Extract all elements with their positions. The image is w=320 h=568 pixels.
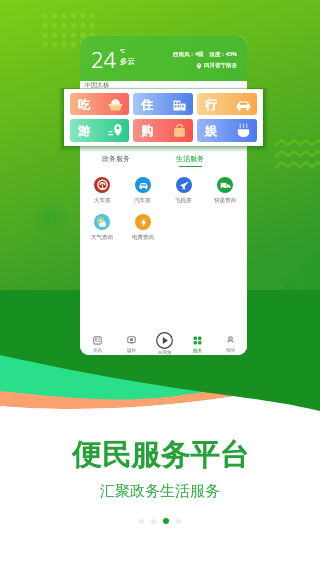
staticText: 住 [141, 97, 153, 112]
staticText: 行 [205, 97, 217, 112]
button[interactable]: 天气查询 [82, 212, 122, 241]
staticText: 爆料 [127, 348, 136, 354]
staticText: 中国太极 [85, 81, 109, 89]
button[interactable] [163, 518, 169, 524]
button[interactable]: 政务服务 [99, 153, 133, 164]
button[interactable] [176, 519, 181, 524]
button[interactable] [151, 519, 156, 524]
staticText: 汽车票 [134, 197, 151, 204]
staticText: 24 [91, 44, 117, 74]
staticText: 多云 [120, 57, 135, 66]
staticText: 吃 [78, 97, 90, 112]
staticText: 飞机票 [175, 197, 192, 204]
staticText: 四川省宁南县 [204, 62, 237, 69]
staticText: 娱 [205, 123, 217, 138]
staticText: ℃ [120, 48, 125, 55]
staticText: 便民服务平台 [72, 437, 249, 474]
button[interactable]: 火车票 [82, 175, 122, 204]
button[interactable] [139, 519, 144, 524]
button[interactable]: 电费查询 [122, 212, 163, 241]
button[interactable]: 娱 [197, 119, 257, 142]
button[interactable]: 服务 [181, 328, 214, 355]
staticText: 快递查询 [214, 197, 236, 204]
staticText: 汇聚政务生活服务 [100, 482, 220, 501]
button[interactable]: 吃 [70, 93, 129, 115]
staticText: 天气查询 [91, 234, 113, 241]
button[interactable]: 生活服务 [173, 153, 207, 168]
button[interactable]: 住 [133, 93, 193, 115]
staticText: 生活服务 [176, 154, 204, 163]
button[interactable]: 我的 [214, 328, 247, 355]
button[interactable]: 游 [70, 119, 129, 142]
staticText: 服务 [193, 348, 202, 354]
button[interactable]: 爆料 [114, 328, 148, 355]
staticText: 游 [78, 123, 90, 138]
staticText: 火车票 [94, 197, 111, 204]
button[interactable]: 汽车票 [122, 175, 163, 204]
button[interactable]: 短视频 [148, 328, 181, 355]
staticText: 短视频 [158, 350, 172, 355]
staticText: 西南风：4级 湿度：45% [173, 50, 237, 58]
button[interactable]: 资讯 [80, 328, 114, 355]
button[interactable]: 行 [197, 93, 257, 115]
staticText: 电费查询 [132, 234, 154, 241]
button[interactable]: 飞机票 [163, 175, 204, 204]
button[interactable]: 购 [133, 119, 193, 142]
staticText: 购 [141, 123, 153, 138]
staticText: 我的 [226, 348, 235, 354]
staticText: 政务服务 [102, 154, 130, 163]
button[interactable]: 快递查询 [204, 175, 245, 204]
staticText: 资讯 [93, 348, 102, 354]
